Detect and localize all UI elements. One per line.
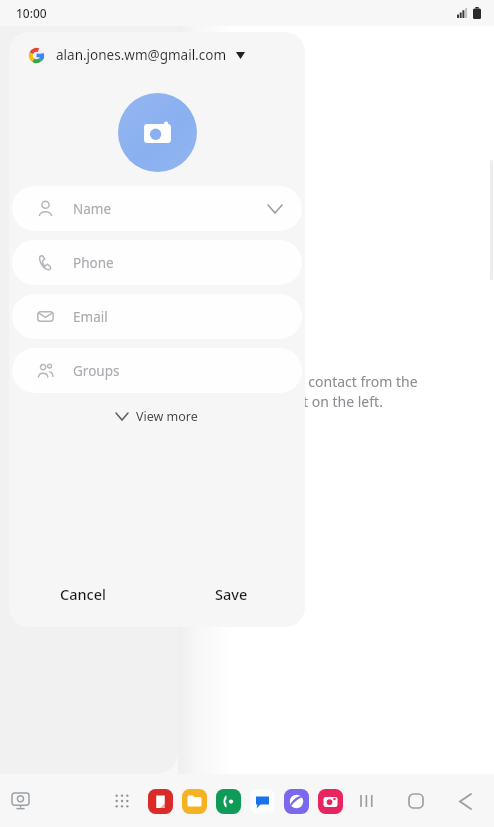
staticText: 10:00: [16, 5, 47, 21]
button[interactable]: Keep notes: [143, 784, 177, 818]
button[interactable]: Apps: [106, 785, 138, 817]
staticText: Cancel: [60, 584, 106, 604]
button[interactable]: Cancel: [9, 561, 157, 627]
button[interactable]: alan.jones.wm@gmail.com: [9, 32, 305, 78]
staticText: Email: [73, 308, 282, 326]
staticText: Name: [73, 200, 268, 218]
button[interactable]: Recent apps panel: [2, 783, 38, 819]
button[interactable]: Recent apps: [348, 782, 386, 820]
button[interactable]: Home: [397, 782, 435, 820]
staticText: Groups: [73, 362, 282, 380]
button[interactable]: Name: [12, 186, 302, 231]
button[interactable]: Save: [157, 561, 305, 627]
button[interactable]: Phone: [12, 240, 302, 285]
button[interactable]: Email: [12, 294, 302, 339]
button[interactable]: View more: [9, 393, 305, 439]
button[interactable]: Groups: [12, 348, 302, 393]
staticText: alan.jones.wm@gmail.com: [56, 46, 227, 64]
staticText: Select a contact from the list on the le…: [254, 372, 418, 412]
staticText: View more: [136, 408, 198, 425]
button[interactable]: Internet: [279, 784, 313, 818]
button[interactable]: Camera: [313, 784, 347, 818]
button[interactable]: Add photo: [118, 93, 197, 172]
staticText: Phone: [73, 254, 282, 272]
button[interactable]: Back: [446, 782, 484, 820]
staticText: Save: [215, 584, 248, 604]
button[interactable]: Phone: [211, 784, 245, 818]
button[interactable]: Messages: [245, 784, 279, 818]
button[interactable]: Files: [177, 784, 211, 818]
